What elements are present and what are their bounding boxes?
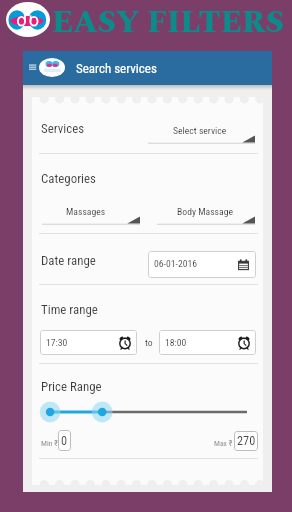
- button[interactable]: Pick date: [148, 251, 256, 278]
- button[interactable]: Dropdown: [157, 207, 255, 225]
- button[interactable]: Pick start time: [40, 330, 137, 355]
- staticText: EASY FILTERS: [52, 0, 285, 46]
- staticText: Select service: [173, 125, 227, 136]
- button[interactable]: Dropdown: [42, 207, 140, 225]
- staticText: Body Massage: [177, 206, 233, 217]
- staticText: Categories: [41, 171, 96, 186]
- staticText: 17:30: [46, 337, 68, 348]
- staticText: Time range: [41, 302, 98, 317]
- staticText: 270: [237, 434, 256, 448]
- staticText: to: [145, 337, 153, 348]
- staticText: 18:00: [165, 337, 187, 348]
- button[interactable]: Brand logo: [39, 58, 65, 77]
- button[interactable]: Pick end time: [159, 330, 256, 355]
- staticText: 06-01-2016: [154, 258, 198, 269]
- staticText: Services: [41, 121, 85, 136]
- button[interactable]: 0: [58, 430, 71, 451]
- button[interactable]: Open navigation menu: [25, 59, 38, 77]
- staticText: Date range: [41, 253, 96, 268]
- staticText: 0: [61, 434, 68, 448]
- staticText: Max ₹: [214, 439, 233, 448]
- staticText: Massages: [66, 206, 106, 217]
- staticText: Search services: [76, 61, 157, 76]
- button[interactable]: 270: [234, 431, 258, 451]
- button[interactable]: Dropdown: [148, 126, 255, 144]
- button[interactable]: Price range slider: [38, 400, 258, 424]
- staticText: Price Range: [41, 379, 102, 394]
- staticText: Min ₹: [41, 439, 58, 448]
